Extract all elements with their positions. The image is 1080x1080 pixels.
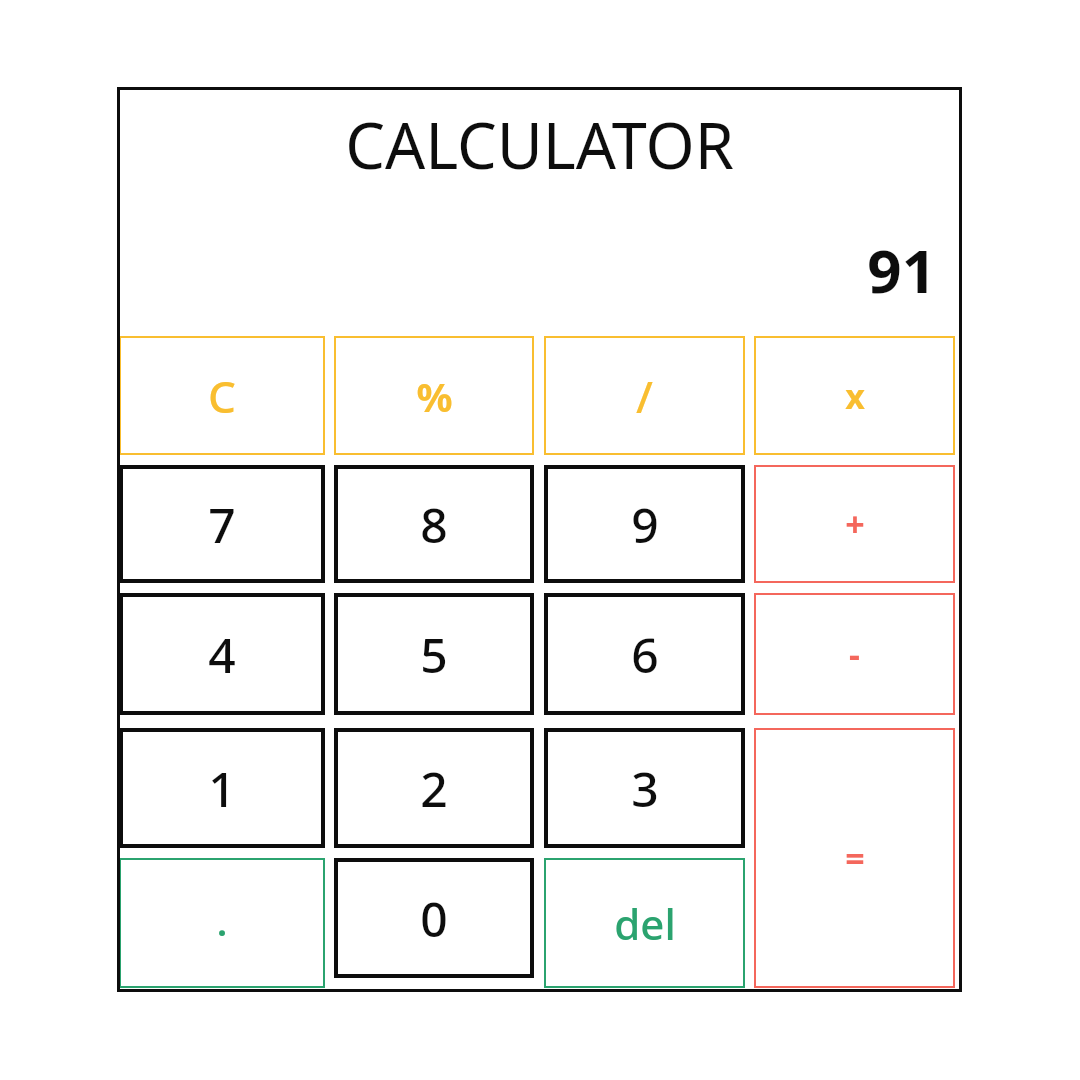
button[interactable]: 0 bbox=[334, 858, 534, 978]
button[interactable]: Equals bbox=[754, 728, 955, 988]
button[interactable]: Add bbox=[754, 465, 955, 583]
staticText: % bbox=[416, 369, 453, 423]
staticText: = bbox=[845, 835, 865, 881]
button[interactable]: 8 bbox=[334, 465, 534, 583]
staticText: + bbox=[845, 501, 865, 547]
button[interactable]: 3 bbox=[544, 728, 745, 848]
button[interactable]: 6 bbox=[544, 593, 745, 715]
button[interactable]: 5 bbox=[334, 593, 534, 715]
staticText: 7 bbox=[208, 492, 236, 557]
staticText: / bbox=[636, 366, 653, 426]
button[interactable]: 1 bbox=[119, 728, 325, 848]
staticText: 2 bbox=[420, 756, 448, 821]
staticText: - bbox=[849, 631, 860, 677]
button[interactable]: 4 bbox=[119, 593, 325, 715]
staticText: 8 bbox=[420, 492, 448, 557]
button[interactable]: Subtract bbox=[754, 593, 955, 715]
staticText: CALCULATOR bbox=[117, 102, 962, 188]
staticText: del bbox=[614, 895, 676, 952]
staticText: 5 bbox=[420, 622, 448, 687]
button[interactable]: Multiply bbox=[754, 336, 955, 455]
button[interactable]: 7 bbox=[119, 465, 325, 583]
staticText: 4 bbox=[208, 622, 236, 687]
button[interactable]: Decimal point bbox=[119, 858, 325, 988]
button[interactable]: Delete bbox=[544, 858, 745, 988]
button[interactable]: Percent bbox=[334, 336, 534, 455]
staticText: . bbox=[217, 900, 227, 946]
button[interactable]: Clear bbox=[119, 336, 325, 455]
staticText: 1 bbox=[208, 756, 236, 821]
staticText: x bbox=[845, 373, 865, 419]
staticText: C bbox=[208, 366, 236, 426]
button[interactable]: 2 bbox=[334, 728, 534, 848]
button[interactable]: 9 bbox=[544, 465, 745, 583]
staticText: 91 bbox=[117, 229, 936, 311]
staticText: 0 bbox=[420, 886, 448, 951]
staticText: 6 bbox=[631, 622, 659, 687]
button[interactable]: Divide bbox=[544, 336, 745, 455]
staticText: 9 bbox=[631, 492, 659, 557]
staticText: 3 bbox=[631, 756, 659, 821]
